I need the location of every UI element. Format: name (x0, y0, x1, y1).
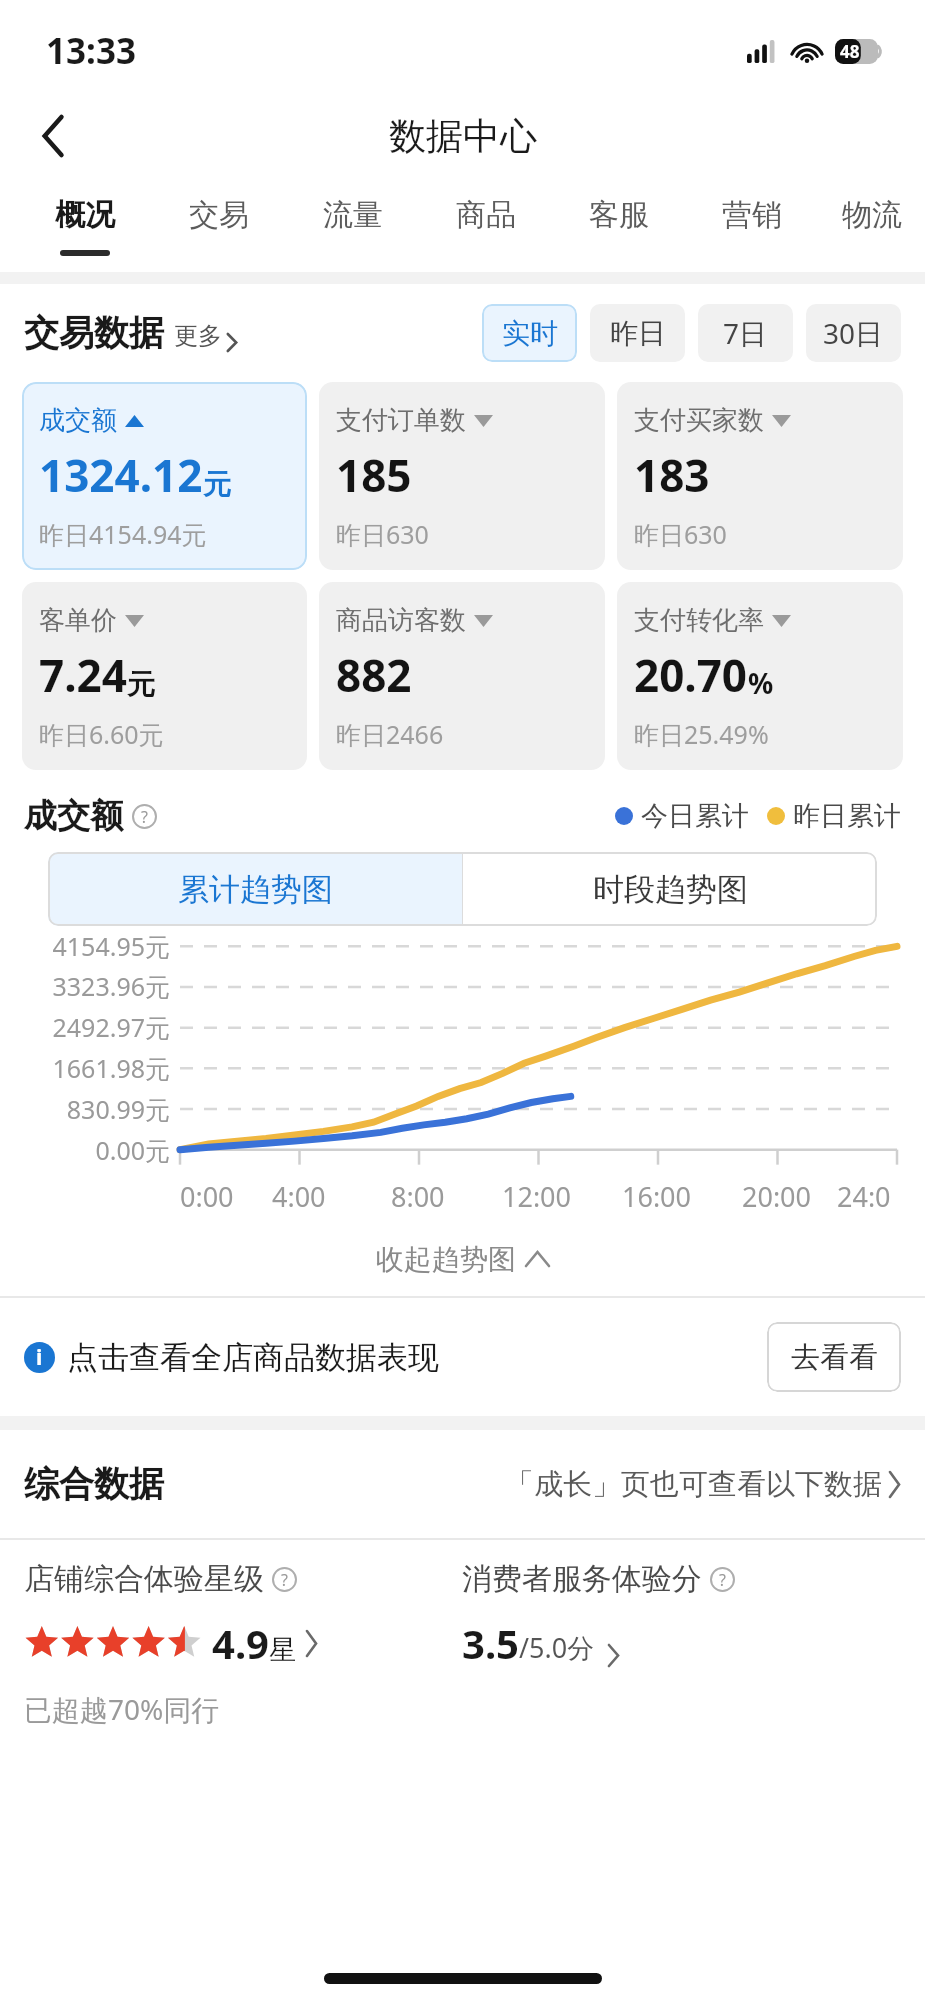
staticText: 30日 (823, 314, 884, 352)
staticText: 营销 (722, 196, 782, 234)
staticText: 更多 (174, 321, 222, 351)
staticText: 183 (634, 445, 710, 505)
button[interactable]: 收起趋势图 (0, 1222, 925, 1296)
staticText: 4:00 (272, 1178, 326, 1215)
staticText: 点击查看全店商品数据表现 (67, 1338, 439, 1377)
button[interactable]: i (24, 1338, 439, 1377)
staticText: 综合数据 (24, 1462, 164, 1506)
staticText: 店铺综合体验星级 (24, 1560, 264, 1598)
button[interactable]: 支付买家数 (617, 382, 903, 570)
button[interactable]: 客单价 (22, 582, 307, 770)
staticText: 商品访客数 (336, 604, 466, 637)
staticText: 24:00 (837, 1178, 897, 1222)
button[interactable]: 30日 (806, 304, 901, 362)
staticText: 7.24 (39, 645, 127, 705)
staticText: 流量 (323, 196, 383, 234)
staticText: 支付订单数 (336, 404, 466, 437)
staticText: 今日累计 (641, 799, 749, 833)
staticText: 昨日630 (634, 517, 727, 551)
staticText: 物流 (842, 196, 902, 234)
staticText: 3.5 (462, 1616, 519, 1670)
staticText: 16:00 (622, 1178, 692, 1215)
staticText: 8:00 (391, 1178, 445, 1215)
staticText: 7日 (723, 314, 768, 352)
button[interactable]: 7日 (698, 304, 793, 362)
button[interactable]: 支付转化率 (617, 582, 903, 770)
staticText: 已超越70%同行 (24, 1690, 220, 1728)
staticText: 48 (840, 40, 860, 63)
staticText: 830.99元 (66, 1092, 170, 1126)
staticText: 商品 (456, 196, 516, 234)
staticText: 0.00元 (95, 1133, 170, 1167)
staticText: 累计趋势图 (178, 870, 333, 909)
button[interactable]: 支付订单数 (319, 382, 605, 570)
staticText: 成交额 (39, 404, 117, 437)
staticText: 1324.12 (39, 445, 203, 505)
staticText: 0:00 (180, 1178, 234, 1215)
staticText: 收起趋势图 (376, 1242, 516, 1277)
staticText: 1661.98元 (52, 1051, 170, 1085)
staticText: 20.70 (634, 645, 748, 705)
button[interactable]: 营销 (685, 180, 818, 272)
button[interactable]: 「成长」页也可查看以下数据 (505, 1466, 901, 1503)
staticText: 2492.97元 (52, 1010, 170, 1044)
staticText: 成交额 (24, 795, 123, 837)
staticText: 客单价 (39, 604, 117, 637)
staticText: 882 (336, 645, 412, 705)
staticText: 昨日2466 (336, 717, 444, 751)
staticText: i (36, 1343, 43, 1372)
button[interactable]: 成交额 (22, 382, 307, 570)
staticText: 去看看 (791, 1339, 878, 1376)
button[interactable]: 概况 (18, 180, 152, 272)
button[interactable]: 昨日 (590, 304, 685, 362)
staticText: 交易 (189, 196, 249, 234)
staticText: 3323.96元 (52, 969, 170, 1003)
staticText: 昨日4154.94元 (39, 517, 207, 551)
staticText: ? (141, 806, 148, 828)
staticText: 实时 (502, 316, 558, 351)
button[interactable]: 物流 (818, 180, 925, 272)
button[interactable]: 实时 (482, 304, 577, 362)
button[interactable]: 交易数据 (24, 311, 238, 355)
staticText: 13:33 (46, 27, 136, 75)
staticText: 「成长」页也可查看以下数据 (505, 1466, 882, 1503)
staticText: ? (281, 1569, 288, 1591)
staticText: 交易数据 (24, 311, 164, 355)
staticText: 支付买家数 (634, 404, 764, 437)
button[interactable]: 客服 (552, 180, 685, 272)
button[interactable]: 商品 (419, 180, 552, 272)
staticText: 元 (127, 667, 155, 702)
button[interactable]: 去看看 (767, 1322, 901, 1392)
button[interactable]: 流量 (286, 180, 419, 272)
staticText: /5.0分 (519, 1629, 595, 1666)
button[interactable]: 4.9 (24, 1616, 318, 1670)
staticText: 时段趋势图 (593, 870, 748, 909)
staticText: 4154.95元 (52, 929, 170, 963)
button[interactable]: 时段趋势图 (463, 852, 877, 926)
staticText: 昨日6.60元 (39, 717, 164, 751)
button[interactable]: 商品访客数 (319, 582, 605, 770)
staticText: 昨日630 (336, 517, 429, 551)
staticText: 数据中心 (389, 113, 537, 160)
staticText: 客服 (589, 196, 649, 234)
staticText: % (748, 664, 774, 702)
button[interactable]: 累计趋势图 (48, 852, 462, 926)
staticText: 元 (203, 467, 231, 502)
staticText: 20:00 (742, 1178, 812, 1215)
staticText: 185 (336, 445, 412, 505)
staticText: 支付转化率 (634, 604, 764, 637)
staticText: 昨日累计 (793, 799, 901, 833)
button[interactable]: 3.5 (462, 1616, 620, 1670)
staticText: ? (719, 1569, 726, 1591)
staticText: 星 (269, 1633, 296, 1667)
staticText: 概况 (55, 196, 115, 234)
staticText: 消费者服务体验分 (462, 1560, 702, 1598)
staticText: 昨日 (610, 316, 666, 351)
staticText: 昨日25.49% (634, 717, 769, 751)
staticText: 12:00 (502, 1178, 572, 1215)
staticText: 4.9 (212, 1616, 269, 1670)
button[interactable]: 交易 (152, 180, 286, 272)
button[interactable]: Back (20, 103, 86, 169)
